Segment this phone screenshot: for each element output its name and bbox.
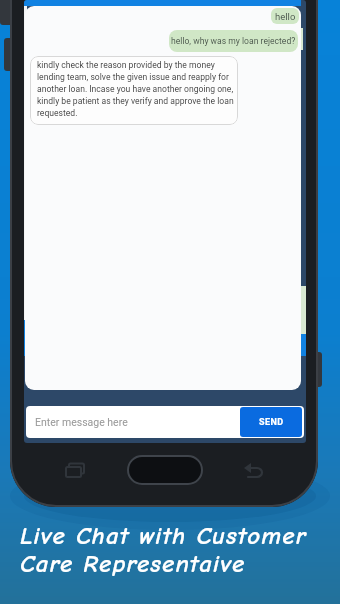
button[interactable]: hello, why was my loan rejected? [169, 30, 298, 52]
staticText: kindly check the reason provided by the … [37, 60, 234, 118]
staticText: hello, why was my loan rejected? [171, 36, 296, 46]
button[interactable]: kindly check the reason provided by the … [30, 56, 238, 125]
button[interactable]: Live Chat with Customer Care Representai… [20, 521, 307, 579]
staticText: SEND [259, 417, 284, 428]
button[interactable]: hello [271, 8, 299, 24]
button[interactable]: Enter message here [26, 406, 304, 438]
staticText: Enter message here [35, 416, 128, 428]
staticText: hello [275, 11, 296, 22]
button[interactable]: SEND [240, 407, 302, 437]
